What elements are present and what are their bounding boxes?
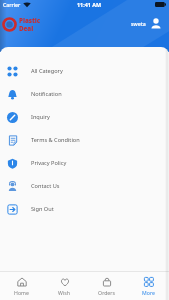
button[interactable]: Orders	[85, 272, 127, 300]
button[interactable]: Inquiry	[0, 105, 169, 128]
staticText: Home	[14, 289, 29, 296]
button[interactable]: Contact Us	[0, 174, 169, 197]
staticText: Contact Us	[31, 182, 60, 190]
button[interactable]: Sign Out	[0, 197, 169, 220]
staticText: Wish	[58, 289, 70, 296]
staticText: Sign Out	[31, 205, 54, 213]
staticText: 11:41 AM	[77, 1, 102, 8]
staticText: Carrier	[3, 1, 21, 8]
button[interactable]: Home	[0, 272, 43, 300]
staticText: Inquiry	[31, 113, 50, 121]
button[interactable]: All Category	[0, 59, 169, 82]
button[interactable]: sweta	[131, 18, 161, 29]
staticText: Notification	[31, 90, 62, 98]
staticText: Privacy Policy	[31, 159, 67, 167]
staticText: sweta	[131, 20, 146, 27]
button[interactable]: Notification	[0, 82, 169, 105]
staticText: Deal	[19, 24, 34, 32]
button[interactable]: More	[127, 272, 169, 300]
staticText: More	[142, 289, 155, 296]
staticText: Plastic	[19, 16, 41, 24]
staticText: Terms & Condition	[31, 136, 80, 144]
staticText: All Category	[31, 67, 63, 75]
button[interactable]: Privacy Policy	[0, 151, 169, 174]
button[interactable]: Plastic Deal home	[3, 16, 41, 32]
button[interactable]: Wish	[43, 272, 85, 300]
staticText: Orders	[98, 289, 115, 296]
button[interactable]: Terms & Condition	[0, 128, 169, 151]
